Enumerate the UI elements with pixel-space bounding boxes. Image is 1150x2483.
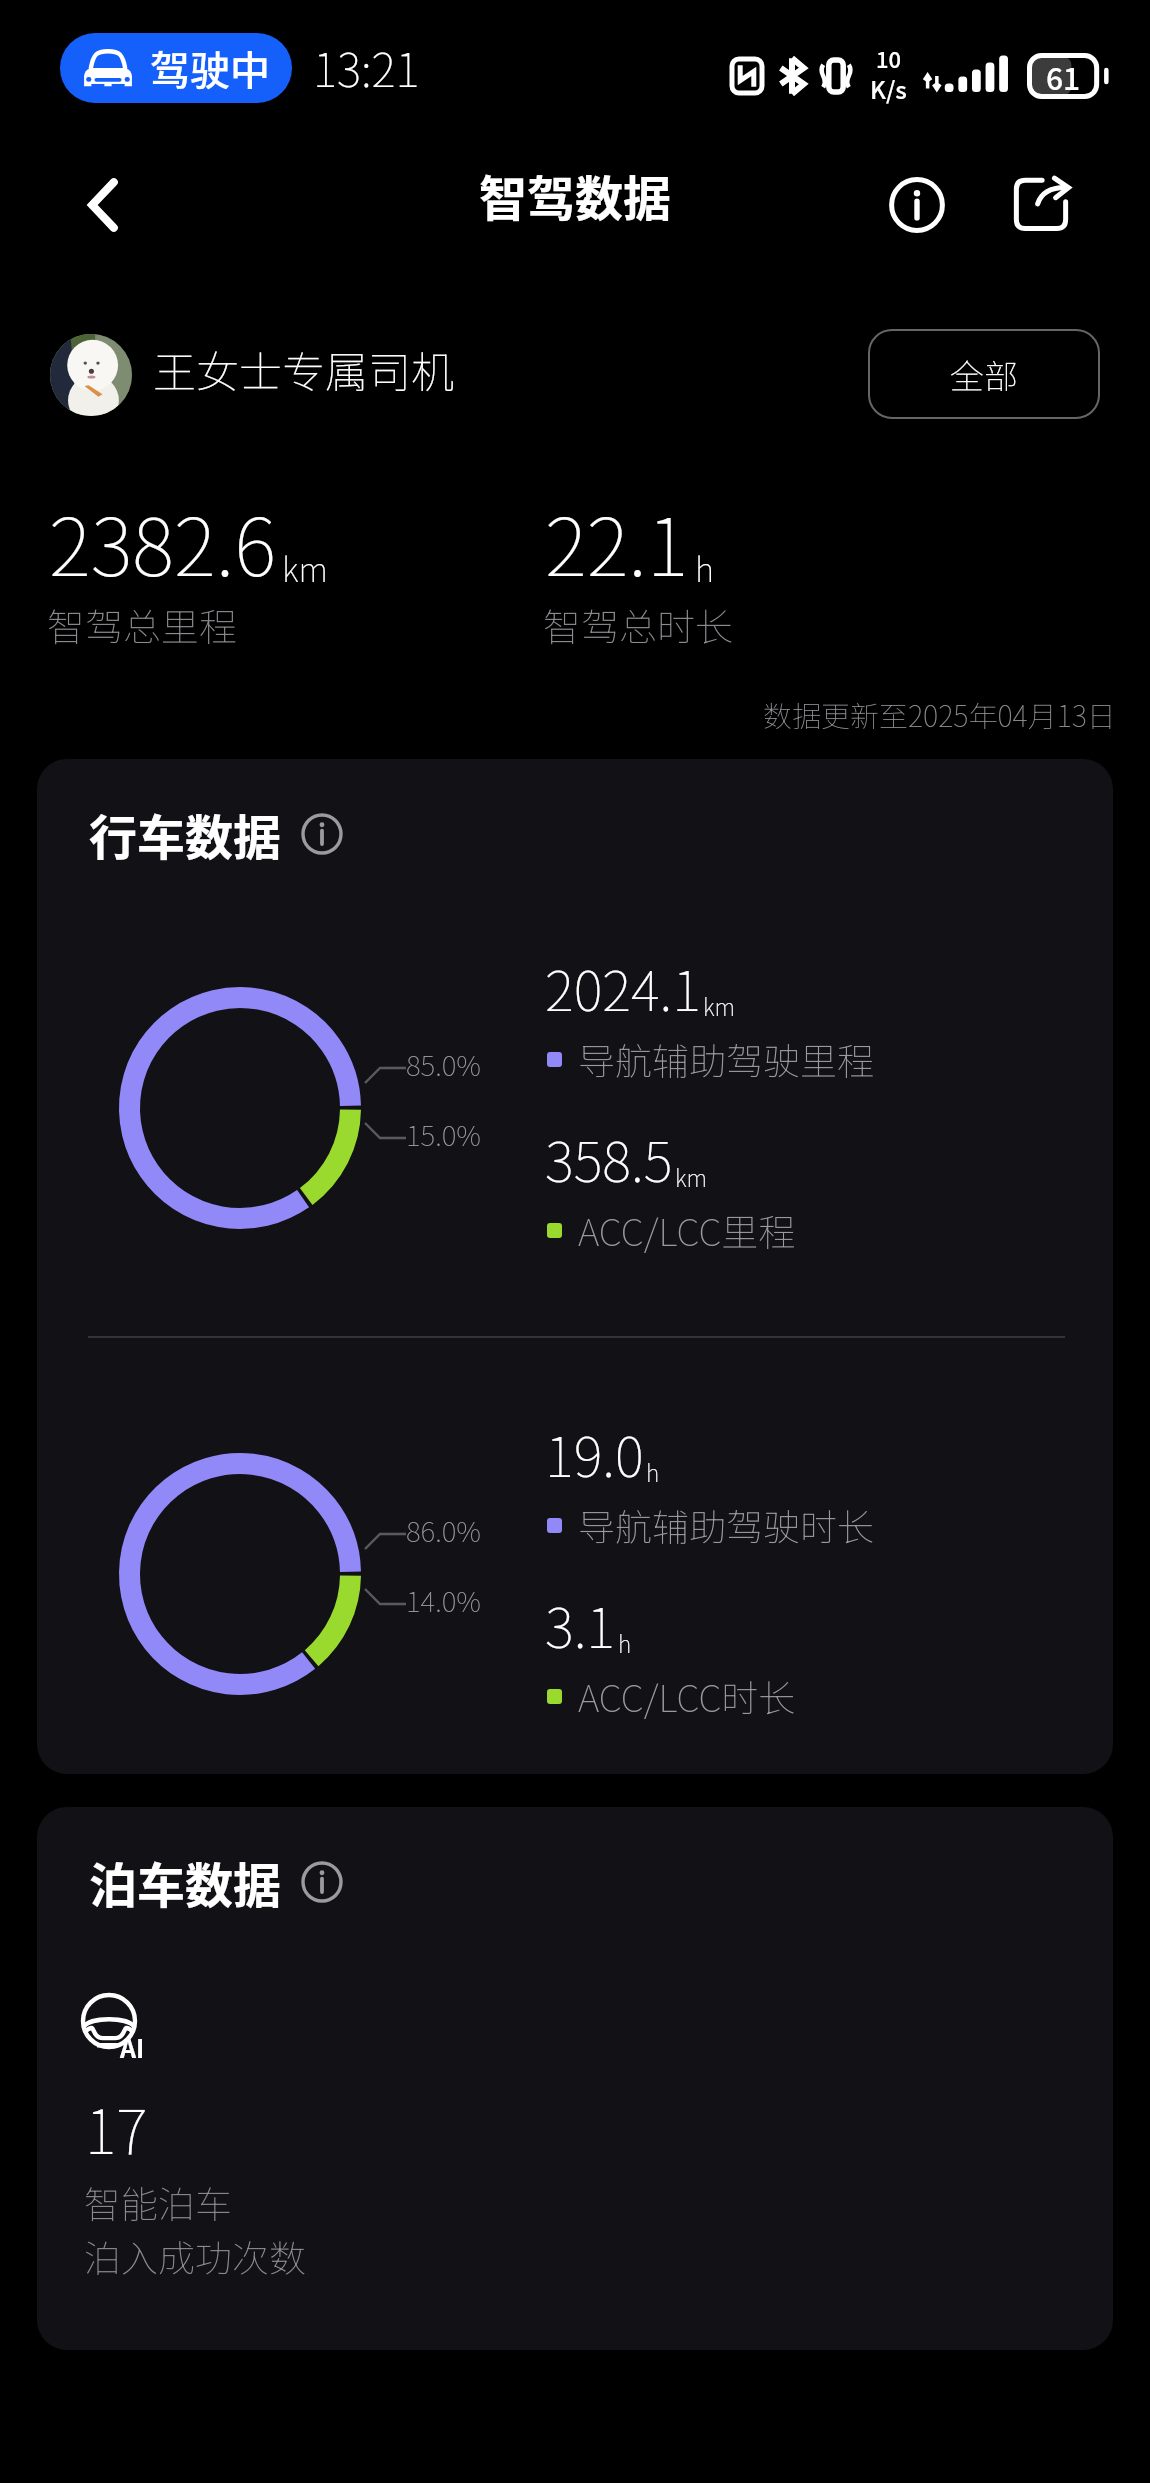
staticText: 19.0	[545, 1413, 644, 1493]
staticText: 导航辅助驾驶里程	[578, 1032, 874, 1086]
staticText: 10	[876, 42, 902, 74]
staticText: 智能泊车	[84, 2175, 232, 2229]
staticText: 驾驶中	[150, 39, 270, 97]
staticText: 王女士专属司机	[153, 338, 454, 400]
staticText: 14.0%	[406, 1580, 481, 1621]
staticText: ACC/LCC时长	[578, 1669, 796, 1723]
button[interactable]: Back	[58, 160, 148, 250]
staticText: h	[646, 1455, 660, 1488]
staticText: ACC/LCC里程	[578, 1203, 796, 1257]
button[interactable]: 行车数据	[37, 759, 1113, 1774]
staticText: 智驾总里程	[47, 597, 238, 652]
button[interactable]: Profile photo	[50, 334, 132, 416]
staticText: 2382.6	[49, 483, 276, 599]
button[interactable]: 驾驶中	[60, 33, 292, 103]
button[interactable]: Info	[872, 160, 962, 250]
staticText: 智驾总时长	[543, 597, 734, 652]
staticText: K/s	[870, 71, 907, 106]
staticText: 2024.1	[545, 947, 701, 1027]
staticText: AI	[120, 2029, 145, 2065]
staticText: 数据更新至2025年04月13日	[763, 693, 1116, 735]
staticText: km	[675, 1160, 707, 1193]
staticText: 泊车数据	[89, 1847, 282, 1917]
staticText: km	[703, 989, 735, 1022]
staticText: 导航辅助驾驶时长	[578, 1498, 874, 1552]
staticText: 358.5	[545, 1118, 673, 1198]
staticText: 全部	[950, 350, 1018, 399]
staticText: 22.1	[545, 483, 689, 599]
staticText: 61	[1046, 55, 1081, 98]
staticText: km	[282, 544, 328, 592]
staticText: 泊入成功次数	[84, 2229, 306, 2283]
staticText: 3.1	[545, 1584, 616, 1664]
button[interactable]: Share	[996, 160, 1086, 250]
staticText: 15.0%	[406, 1114, 481, 1155]
staticText: 行车数据	[89, 799, 282, 869]
staticText: 85.0%	[406, 1044, 481, 1085]
staticText: h	[695, 544, 714, 592]
button[interactable]: 全部	[868, 329, 1100, 419]
staticText: h	[618, 1626, 632, 1659]
staticText: 13:21	[313, 34, 420, 101]
button[interactable]: 泊车数据	[37, 1807, 1113, 2350]
staticText: 智驾数据	[479, 160, 672, 230]
staticText: 86.0%	[406, 1510, 481, 1551]
staticText: 17	[85, 2084, 148, 2171]
